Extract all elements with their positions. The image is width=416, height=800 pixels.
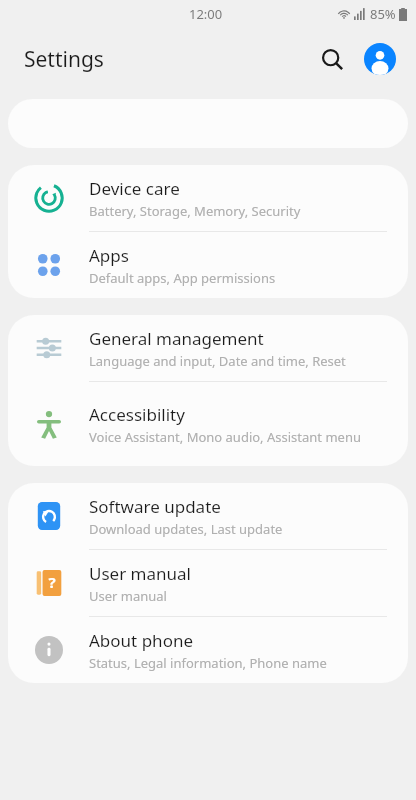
staticText: Language and input, Date and time, Reset [89,352,346,370]
staticText: Voice Assistant, Mono audio, Assistant m… [89,428,361,446]
button[interactable]: Account [358,37,402,81]
button[interactable]: About phone [8,617,408,683]
staticText: General management [89,327,264,350]
staticText: User manual [89,562,191,585]
button[interactable]: Software update [8,483,408,550]
button[interactable]: Search [310,37,354,81]
staticText: About phone [89,629,194,652]
staticText: User manual [89,587,167,605]
staticText: Battery, Storage, Memory, Security [89,202,301,220]
staticText: ? [48,572,56,592]
button[interactable]: Apps [8,232,408,298]
staticText: Software update [89,495,221,518]
button[interactable]: ? [8,550,408,617]
staticText: Settings [24,45,104,74]
staticText: 12:00 [189,5,223,23]
staticText: Download updates, Last update [89,520,283,538]
button[interactable]: Device care [8,165,408,232]
staticText: Status, Legal information, Phone name [89,654,327,672]
staticText: Default apps, App permissions [89,269,276,287]
staticText: Accessibility [89,403,185,426]
button[interactable]: Accessibility [8,382,408,466]
staticText: 85% [370,5,396,23]
staticText: Device care [89,177,180,200]
staticText: Apps [89,244,129,267]
button[interactable]: General management [8,315,408,382]
